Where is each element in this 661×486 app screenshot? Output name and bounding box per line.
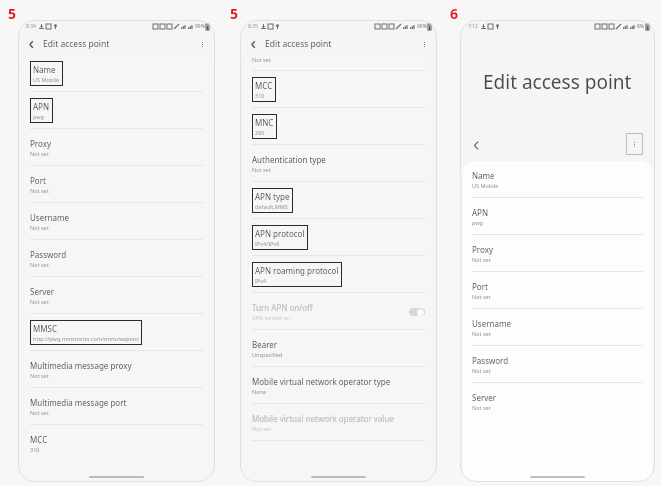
button[interactable]: APN roaming protocol xyxy=(243,256,434,293)
staticText: pwg xyxy=(33,113,44,120)
button[interactable]: APN xyxy=(21,92,212,129)
button[interactable]: Proxy xyxy=(21,129,212,166)
button[interactable]: Turn APN on/off xyxy=(243,293,434,330)
staticText: pwg xyxy=(472,219,483,226)
staticText: Not set xyxy=(30,150,49,157)
staticText: Not set xyxy=(252,56,271,63)
button[interactable]: Not set xyxy=(243,55,434,71)
staticText: 5 xyxy=(8,4,17,23)
staticText: 7:12 xyxy=(468,23,478,30)
staticText: Server xyxy=(30,286,55,297)
button[interactable]: Back xyxy=(24,37,38,51)
staticText: Proxy xyxy=(472,244,493,255)
staticText: Edit access point xyxy=(43,38,110,50)
staticText: Not set xyxy=(472,293,491,300)
staticText: Proxy xyxy=(30,138,51,149)
staticText: 310 xyxy=(30,446,40,453)
staticText: None xyxy=(252,388,267,395)
staticText: APN xyxy=(33,101,50,112)
button[interactable]: Server xyxy=(463,383,652,420)
button[interactable]: Port xyxy=(21,166,212,203)
staticText: 8:34 xyxy=(26,23,36,30)
button[interactable]: More options xyxy=(418,38,430,50)
staticText: Not set xyxy=(30,224,49,231)
staticText: Port xyxy=(472,281,488,292)
button[interactable]: Back xyxy=(468,137,484,153)
staticText: Port xyxy=(30,175,46,186)
staticText: 5 xyxy=(230,4,239,23)
staticText: MNC xyxy=(255,117,274,128)
button[interactable]: Username xyxy=(463,309,652,346)
staticText: Username xyxy=(30,212,69,223)
staticText: Multimedia message port xyxy=(30,397,127,408)
staticText: APN protocol xyxy=(255,228,305,239)
staticText: Password xyxy=(472,355,509,366)
staticText: 8:35 xyxy=(248,23,258,30)
staticText: US Mobile xyxy=(33,76,60,83)
staticText: MCC xyxy=(30,434,48,445)
button[interactable]: MCC xyxy=(21,425,212,462)
staticText: Multimedia message proxy xyxy=(30,360,132,371)
staticText: Not set xyxy=(30,298,49,305)
button[interactable]: More options xyxy=(196,38,208,50)
button[interactable]: Proxy xyxy=(463,235,652,272)
staticText: 310 xyxy=(255,92,265,99)
button[interactable]: MCC xyxy=(243,71,434,108)
staticText: default,MMS xyxy=(255,203,288,210)
staticText: Bearer xyxy=(252,339,278,350)
button[interactable]: MNC xyxy=(243,108,434,145)
staticText: Edit access point xyxy=(483,69,632,95)
staticText: US Mobile xyxy=(472,182,499,189)
button[interactable]: Password xyxy=(463,346,652,383)
staticText: Not set xyxy=(252,425,271,432)
button[interactable]: Multimedia message proxy xyxy=(21,351,212,388)
staticText: Not set xyxy=(472,330,491,337)
staticText: APN turned on. xyxy=(252,314,292,321)
staticText: 99% xyxy=(195,23,205,30)
staticText: Not set xyxy=(472,367,491,374)
staticText: IPv4/IPv6 xyxy=(255,240,280,247)
staticText: Username xyxy=(472,318,511,329)
button[interactable]: Multimedia message port xyxy=(21,388,212,425)
staticText: 99% xyxy=(417,23,427,30)
button[interactable]: Name xyxy=(21,55,212,92)
staticText: Not set xyxy=(30,261,49,268)
staticText: Not set xyxy=(30,372,49,379)
staticText: Mobile virtual network operator value xyxy=(252,413,394,424)
button[interactable]: Server xyxy=(21,277,212,314)
button[interactable]: Username xyxy=(21,203,212,240)
staticText: IPv4 xyxy=(255,277,267,284)
button[interactable]: Back xyxy=(246,37,260,51)
staticText: Server xyxy=(472,392,497,403)
staticText: Not set xyxy=(30,409,49,416)
staticText: Authentication type xyxy=(252,154,326,165)
staticText: Not set xyxy=(252,166,271,173)
staticText: Mobile virtual network operator type xyxy=(252,376,391,387)
button[interactable]: APN xyxy=(463,198,652,235)
button[interactable]: APN type xyxy=(243,182,434,219)
staticText: 260 xyxy=(255,129,265,136)
staticText: Edit access point xyxy=(265,38,332,50)
button[interactable]: MMSC xyxy=(21,314,212,351)
staticText: APN type xyxy=(255,191,290,202)
staticText: MMSC xyxy=(33,323,57,334)
button[interactable]: Name xyxy=(463,161,652,198)
button[interactable]: Authentication type xyxy=(243,145,434,182)
button[interactable]: More options xyxy=(626,133,643,155)
button[interactable]: Port xyxy=(463,272,652,309)
button[interactable]: Password xyxy=(21,240,212,277)
staticText: 8% xyxy=(637,23,645,30)
staticText: 6 xyxy=(450,4,459,23)
button[interactable]: Mobile virtual network operator type xyxy=(243,367,434,404)
staticText: Turn APN on/off xyxy=(252,302,313,313)
button[interactable]: APN protocol xyxy=(243,219,434,256)
staticText: Unspecified xyxy=(252,351,283,358)
staticText: http://pwg.mmsmvno.com/mms/wapenc xyxy=(33,335,139,342)
button[interactable]: Bearer xyxy=(243,330,434,367)
staticText: Not set xyxy=(30,187,49,194)
staticText: MCC xyxy=(255,80,273,91)
button[interactable]: Turn APN on/off xyxy=(409,308,425,316)
button[interactable]: Mobile virtual network operator value xyxy=(243,404,434,441)
staticText: Name xyxy=(472,170,495,181)
staticText: Password xyxy=(30,249,67,260)
